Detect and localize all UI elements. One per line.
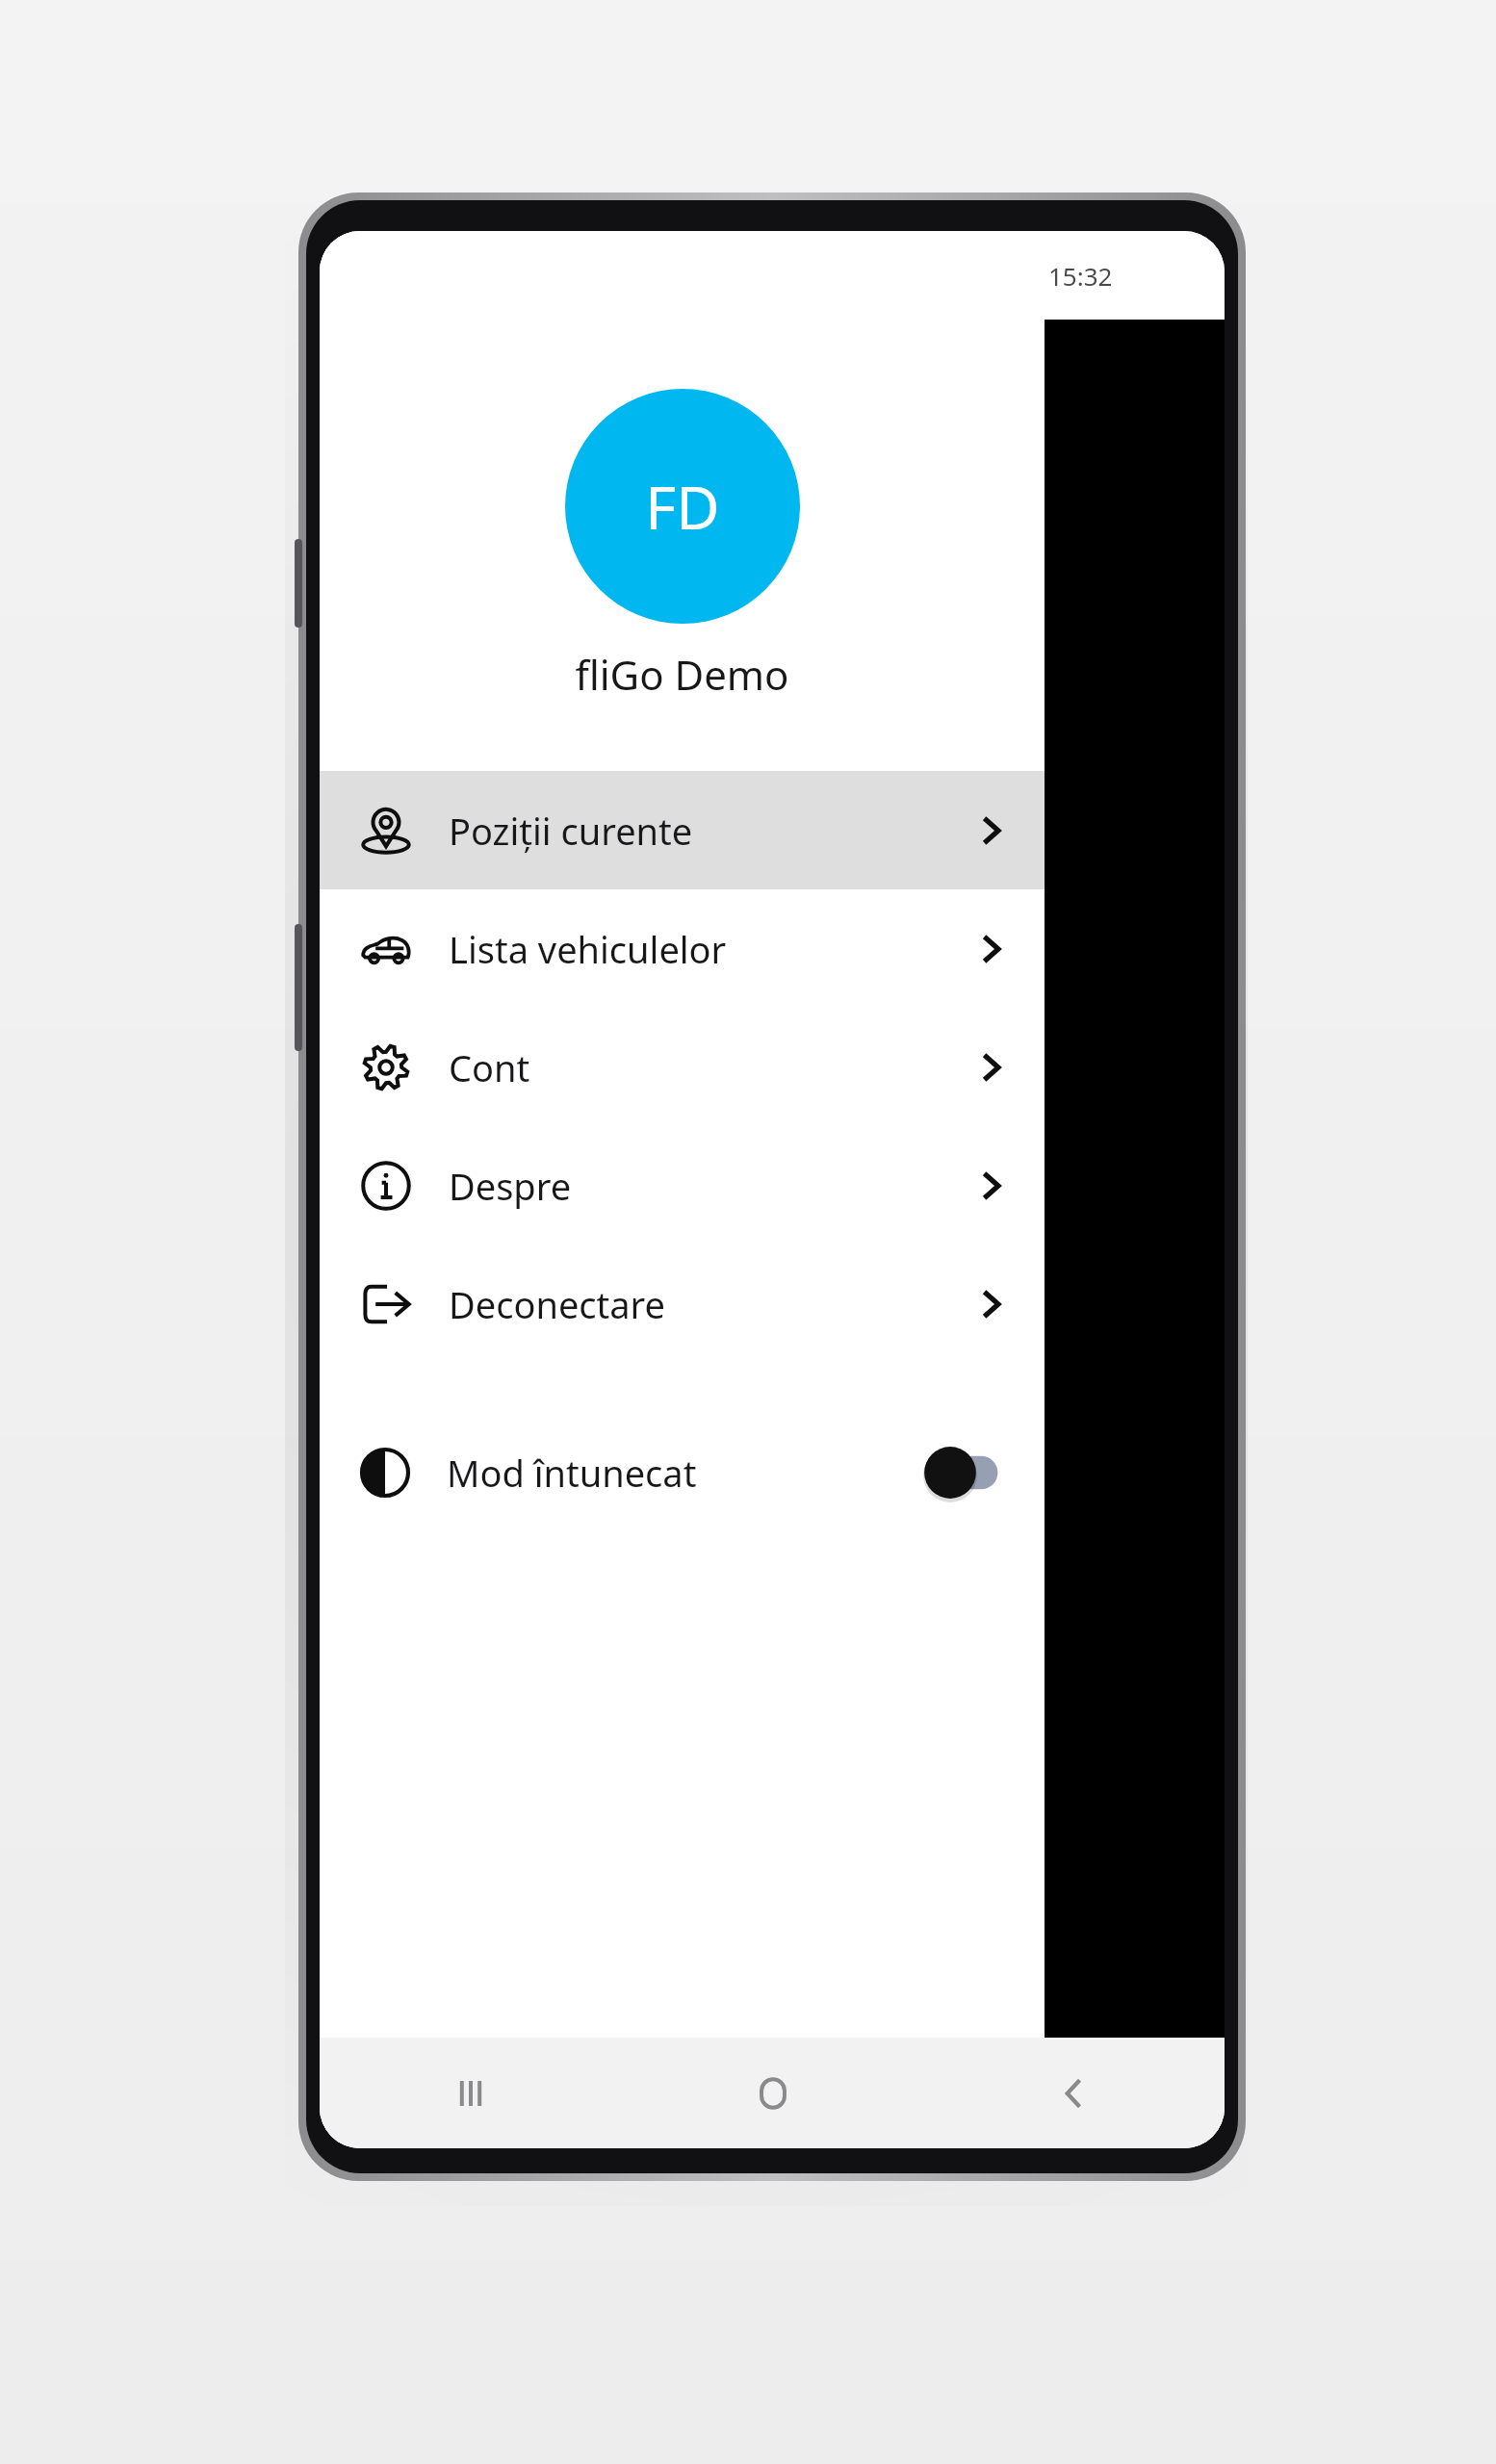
- button[interactable]: Home: [622, 2038, 923, 2148]
- button[interactable]: FD: [565, 389, 800, 624]
- button[interactable]: Dark mode toggle: [923, 1446, 1006, 1500]
- button[interactable]: Deconectare: [320, 1245, 1045, 1363]
- staticText: Poziții curente: [449, 806, 693, 856]
- staticText: Lista vehiculelor: [449, 924, 727, 974]
- button[interactable]: Lista vehiculelor: [320, 889, 1045, 1008]
- button[interactable]: Mod întunecat: [320, 1419, 1045, 1527]
- button[interactable]: Poziții curente: [320, 771, 1045, 889]
- button[interactable]: Cont: [320, 1008, 1045, 1126]
- button[interactable]: Back: [923, 2038, 1225, 2148]
- button[interactable]: Despre: [320, 1126, 1045, 1245]
- button[interactable]: Recent apps: [320, 2038, 622, 2148]
- staticText: Despre: [449, 1161, 572, 1211]
- staticText: FD: [645, 466, 720, 547]
- staticText: 15:32: [1048, 259, 1113, 293]
- staticText: Deconectare: [449, 1279, 665, 1329]
- staticText: fliGo Demo: [575, 647, 789, 702]
- staticText: Cont: [449, 1042, 530, 1092]
- staticText: Mod întunecat: [447, 1448, 697, 1498]
